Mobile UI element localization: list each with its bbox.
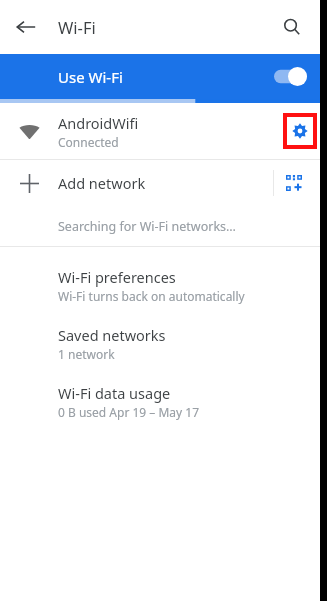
button[interactable]: Saved networks bbox=[0, 314, 320, 372]
button[interactable]: Scan QR code bbox=[277, 166, 311, 200]
button[interactable]: Use Wi-Fi bbox=[0, 54, 320, 99]
staticText: Wi-Fi data usage bbox=[58, 383, 171, 403]
staticText: Add network bbox=[58, 173, 146, 193]
staticText: AndroidWifi bbox=[58, 113, 139, 133]
staticText: Saved networks bbox=[58, 325, 166, 345]
button[interactable]: AndroidWifi bbox=[0, 103, 320, 159]
staticText: Wi-Fi bbox=[58, 16, 96, 38]
staticText: Use Wi-Fi bbox=[58, 67, 123, 87]
staticText: 1 network bbox=[58, 346, 115, 362]
staticText: Wi-Fi preferences bbox=[58, 267, 176, 287]
staticText: 0 B used Apr 19 – May 17 bbox=[58, 404, 200, 420]
button[interactable]: Search bbox=[272, 7, 312, 47]
staticText: Searching for Wi-Fi networks… bbox=[58, 218, 236, 235]
staticText: Connected bbox=[58, 134, 119, 150]
staticText: Wi-Fi turns back on automatically bbox=[58, 288, 245, 304]
button[interactable]: Add network bbox=[0, 160, 320, 206]
button[interactable]: Wi-Fi data usage bbox=[0, 372, 320, 430]
button[interactable]: Back bbox=[6, 7, 46, 47]
button[interactable]: Network settings bbox=[287, 117, 313, 145]
button[interactable]: Wi-Fi preferences bbox=[0, 256, 320, 314]
